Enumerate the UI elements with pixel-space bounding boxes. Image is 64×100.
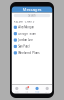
button[interactable]: Alex Morgan: [12, 24, 52, 30]
staticText: Jordan Lee: [18, 38, 33, 42]
staticText: Messages: [22, 7, 41, 12]
button[interactable]: Weekend Plans: [12, 50, 52, 56]
staticText: Weekend Plans: [18, 51, 39, 55]
button[interactable]: Jordan Lee: [12, 37, 52, 43]
staticText: Search: [28, 14, 36, 17]
button[interactable]: More: [42, 85, 52, 93]
button[interactable]: Design Team: [12, 30, 52, 37]
staticText: People: [35, 91, 40, 93]
button[interactable]: Sam Patel: [12, 43, 52, 50]
button[interactable]: Chats: [12, 85, 22, 93]
staticText: Alex Morgan: [18, 25, 34, 29]
button[interactable]: People: [32, 85, 42, 93]
staticText: RECENT CHATS: [14, 20, 34, 23]
staticText: Design Team: [18, 32, 35, 35]
staticText: Calls: [25, 91, 28, 93]
staticText: More: [45, 91, 49, 93]
button[interactable]: Calls: [22, 85, 32, 93]
staticText: Sam Patel: [18, 45, 30, 48]
